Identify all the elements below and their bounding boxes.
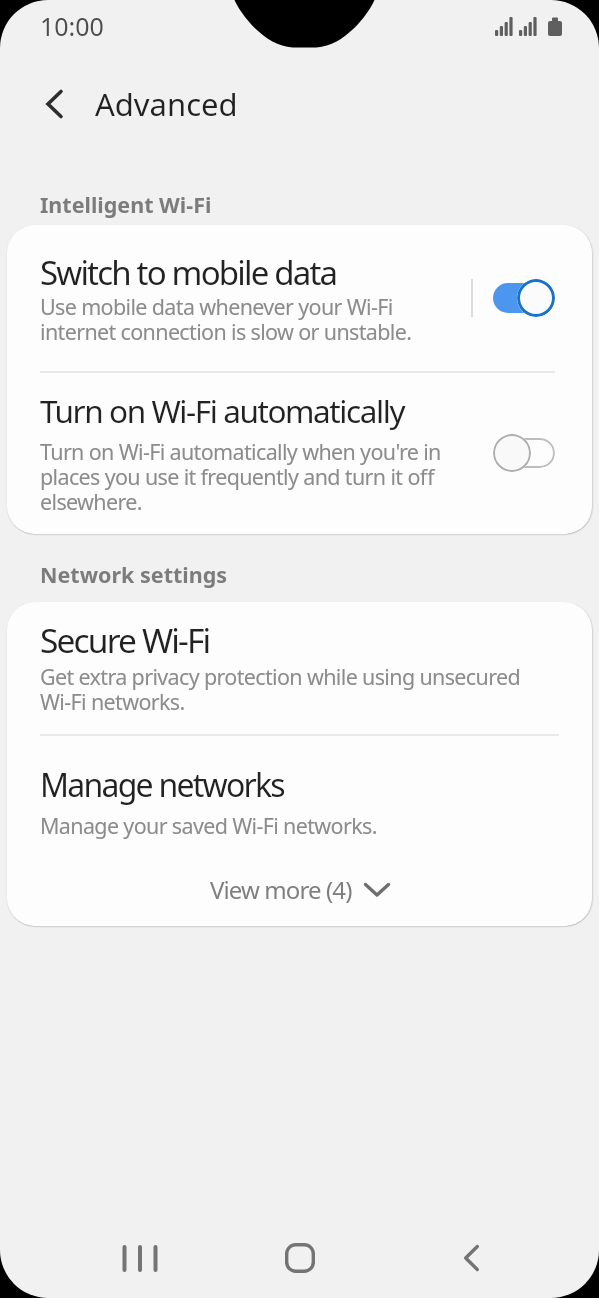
button[interactable] — [36, 85, 74, 123]
staticText: Advanced — [95, 83, 238, 125]
staticText: Turn on Wi-Fi automatically — [40, 389, 405, 432]
button[interactable]: Secure Wi-Fi — [40, 617, 559, 716]
staticText: 10:00 — [40, 9, 104, 43]
button[interactable] — [272, 1230, 328, 1286]
button[interactable]: Turn on Wi-Fi automatically — [40, 389, 555, 516]
staticText: Manage your saved Wi-Fi networks. — [40, 811, 377, 840]
button[interactable] — [443, 1230, 499, 1286]
button[interactable] — [493, 279, 555, 317]
staticText: Intelligent Wi-Fi — [40, 190, 212, 219]
button[interactable]: View more (4) — [40, 873, 559, 906]
staticText: Use mobile data whenever your Wi-Fi inte… — [40, 292, 412, 346]
staticText: Switch to mobile data — [40, 250, 337, 295]
staticText: Turn on Wi-Fi automatically when you're … — [40, 437, 441, 516]
button[interactable] — [493, 434, 555, 472]
staticText: Get extra privacy protection while using… — [40, 662, 521, 716]
staticText: Network settings — [40, 560, 228, 589]
staticText: View more (4) — [210, 873, 352, 906]
button[interactable]: Switch to mobile data — [40, 250, 555, 346]
button[interactable]: Manage networks — [40, 763, 559, 840]
staticText: Secure Wi-Fi — [40, 617, 210, 663]
button[interactable] — [111, 1230, 167, 1286]
staticText: Manage networks — [40, 763, 284, 807]
